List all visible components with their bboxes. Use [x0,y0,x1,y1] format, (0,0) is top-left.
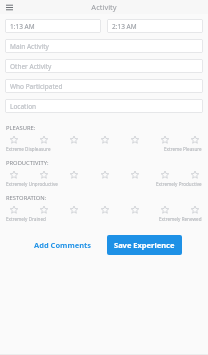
staticText: Activity [91,2,117,12]
button[interactable]: Rate 4 of 7 [99,204,110,215]
button[interactable]: Rate 7 of 7 [189,204,200,215]
button[interactable]: 2:13 AM [107,19,203,33]
staticText: Extreme Pleasure [164,146,202,152]
button[interactable]: Rate 6 of 7 [159,169,170,180]
button[interactable]: Rate 2 of 7 [38,134,49,145]
staticText: Extremely Renewed [159,216,202,222]
button[interactable]: Rate 3 of 7 [68,204,79,215]
button[interactable]: Rate 2 of 7 [38,169,49,180]
staticText: Extremely Unproductive [6,181,58,187]
staticText: Extremely Drained [6,216,46,222]
staticText: Add Comments [34,240,92,250]
button[interactable]: Rate 4 of 7 [99,169,110,180]
button[interactable]: Other Activity [5,59,203,73]
button[interactable]: Location [5,99,203,113]
staticText: Main Activity [10,42,49,51]
button[interactable]: Who Participated [5,79,203,93]
staticText: 2:13 AM [112,22,137,31]
staticText: Other Activity [10,62,52,71]
button[interactable]: Save Experience [107,235,182,255]
button[interactable]: Rate 3 of 7 [68,134,79,145]
button[interactable]: Rate 6 of 7 [159,204,170,215]
button[interactable]: Rate 2 of 7 [38,204,49,215]
staticText: Location [10,102,37,111]
button[interactable]: Rate 4 of 7 [99,134,110,145]
button[interactable]: Rate 1 of 7 [8,169,19,180]
button[interactable]: Rate 5 of 7 [129,204,140,215]
staticText: Save Experience [114,240,175,250]
button[interactable]: Main Activity [5,39,203,53]
button[interactable]: Rate 6 of 7 [159,134,170,145]
button[interactable]: Rate 3 of 7 [68,169,79,180]
staticText: Who Participated [10,82,63,91]
button[interactable]: Rate 7 of 7 [189,169,200,180]
button[interactable]: Rate 1 of 7 [8,204,19,215]
staticText: Extreme Displeasure [6,146,51,152]
button[interactable]: Rate 5 of 7 [129,134,140,145]
button[interactable]: 1:13 AM [5,19,101,33]
staticText: 1:13 AM [10,22,35,31]
button[interactable]: Rate 7 of 7 [189,134,200,145]
staticText: Extremely Productive [156,181,202,187]
staticText: PLEASURE: [6,124,36,132]
staticText: PRODUCTIVITY: [6,159,49,167]
staticText: RESTORATION: [6,194,47,202]
button[interactable]: Open navigation menu [2,0,16,14]
button[interactable]: Add Comments [28,235,98,255]
button[interactable]: Rate 1 of 7 [8,134,19,145]
button[interactable]: Rate 5 of 7 [129,169,140,180]
